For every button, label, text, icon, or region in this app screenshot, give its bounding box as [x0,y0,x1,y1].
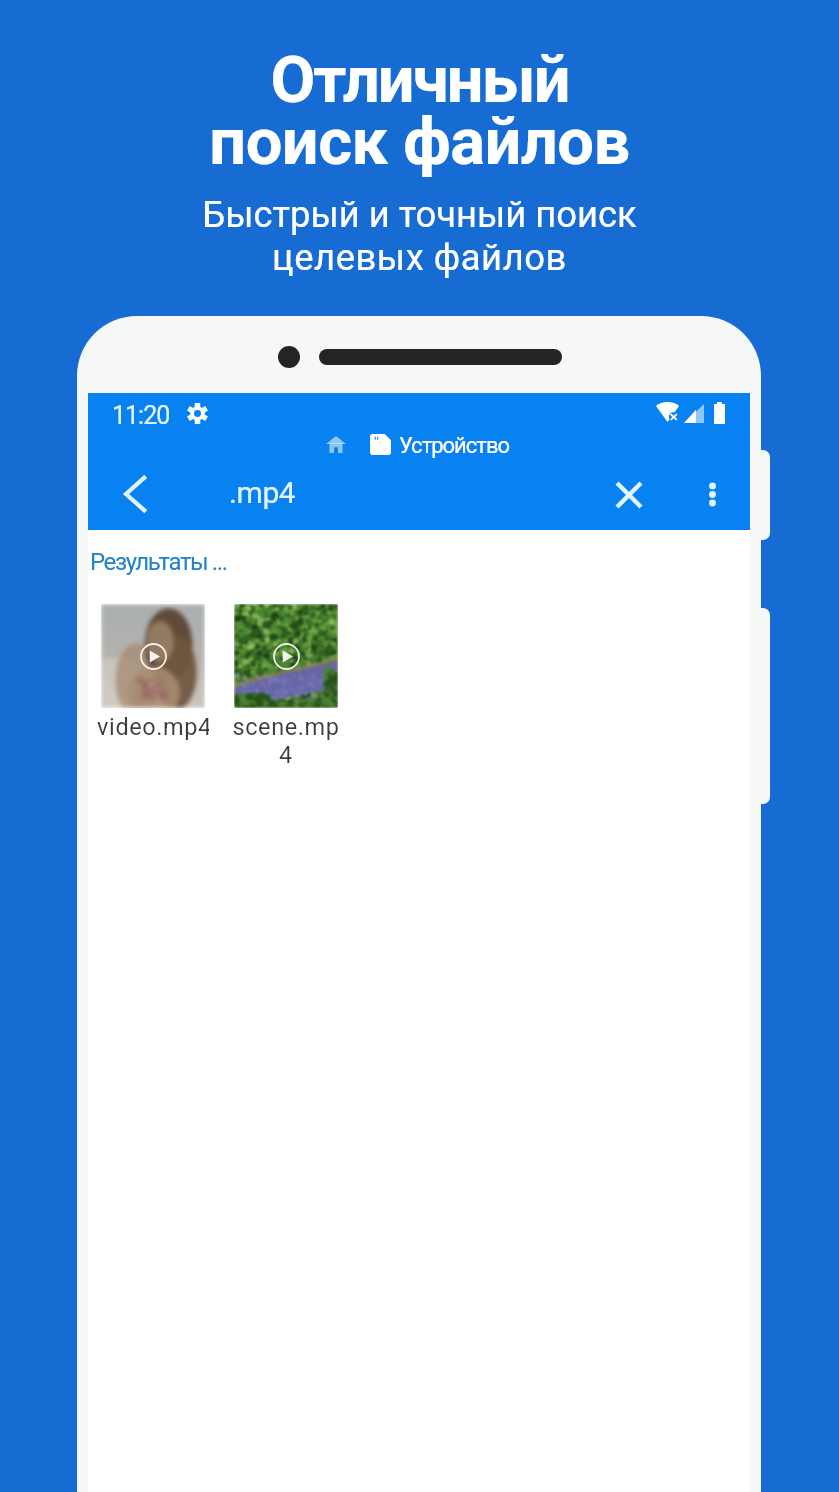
button[interactable]: More options [701,483,724,506]
staticText: Быстрый и точный поиск [0,193,839,236]
button[interactable]: Clear search [617,483,641,507]
button[interactable]: video.mp4 [97,604,209,741]
button[interactable]: scene.mp 4 [230,604,342,769]
staticText: Результаты ... [90,548,227,576]
staticText: поиск файлов [0,104,839,180]
staticText: целевых файлов [0,236,839,279]
staticText: .mp4 [229,475,296,510]
staticText: video.mp4 [97,713,209,741]
staticText: 11:20 [112,401,170,430]
staticText: Устройство [399,433,510,459]
button[interactable]: Settings [187,403,208,424]
staticText: Отличный [0,42,839,118]
button[interactable]: Back [115,472,159,516]
staticText: scene.mp 4 [232,713,340,769]
